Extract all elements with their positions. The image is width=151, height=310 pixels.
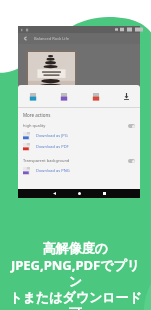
- staticText: high quality: [23, 123, 46, 128]
- staticText: Download as PNG: [36, 168, 70, 173]
- button[interactable]: Home: [78, 192, 81, 195]
- button[interactable]: high quality: [23, 121, 135, 130]
- button[interactable]: Download as PDF: [23, 141, 140, 152]
- button[interactable]: [28, 52, 75, 100]
- button[interactable]: Transparent background: [23, 156, 135, 165]
- button[interactable]: Toggle high quality: [128, 124, 135, 128]
- staticText: Rock Stack Wisdom: [34, 105, 66, 110]
- button[interactable]: Share to mail: [89, 90, 102, 103]
- button[interactable]: Save: [120, 90, 132, 102]
- staticText: 高解像度の JPEG,PNG,PDFでプリン トまたはダウンロード可 能: [8, 240, 143, 310]
- button[interactable]: Share to messages: [26, 90, 39, 103]
- staticText: Download as PDF: [36, 144, 69, 149]
- button[interactable]: Download as PNG: [23, 165, 140, 176]
- staticText: Balanced Rock Life: [34, 36, 70, 41]
- button[interactable]: Download as JPG: [23, 130, 140, 141]
- button[interactable]: Back: [53, 192, 56, 195]
- button[interactable]: Back: [22, 35, 29, 42]
- button[interactable]: Back: [22, 33, 136, 44]
- button[interactable]: Toggle Transparent background: [128, 159, 135, 163]
- staticText: Transparent background: [23, 158, 70, 163]
- button[interactable]: Share to app: [57, 90, 70, 103]
- staticText: Download as JPG: [36, 133, 68, 138]
- staticText: More actions: [23, 112, 51, 118]
- staticText: Download: [26, 114, 46, 119]
